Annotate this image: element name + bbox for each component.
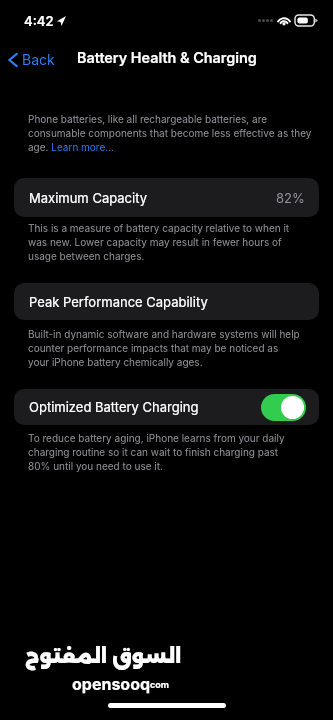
button[interactable]: Maximum Capacity bbox=[14, 178, 319, 217]
staticText: To reduce battery aging, iPhone learns f… bbox=[28, 431, 301, 473]
button[interactable]: Optimized Battery Charging bbox=[14, 389, 319, 425]
staticText: Built-in dynamic software and hardware s… bbox=[28, 327, 302, 369]
staticText: Back bbox=[22, 51, 55, 68]
staticText: السوق المفتوح bbox=[25, 644, 182, 667]
staticText: Phone batteries, like all rechargeable b… bbox=[28, 112, 313, 154]
button[interactable]: Optimized Battery Charging toggle bbox=[261, 394, 306, 421]
staticText: Maximum Capacity bbox=[29, 190, 147, 206]
staticText: opensooq bbox=[72, 674, 151, 693]
staticText: Peak Performance Capability bbox=[29, 294, 208, 310]
staticText: Optimized Battery Charging bbox=[29, 399, 199, 415]
staticText: .com bbox=[147, 679, 170, 690]
staticText: 82% bbox=[276, 190, 305, 206]
button[interactable]: Back bbox=[8, 51, 55, 68]
staticText: Battery Health & Charging bbox=[77, 49, 257, 66]
staticText: This is a measure of battery capacity re… bbox=[28, 221, 311, 263]
staticText: 4:42 bbox=[24, 13, 54, 29]
button[interactable]: Peak Performance Capability bbox=[14, 283, 319, 320]
